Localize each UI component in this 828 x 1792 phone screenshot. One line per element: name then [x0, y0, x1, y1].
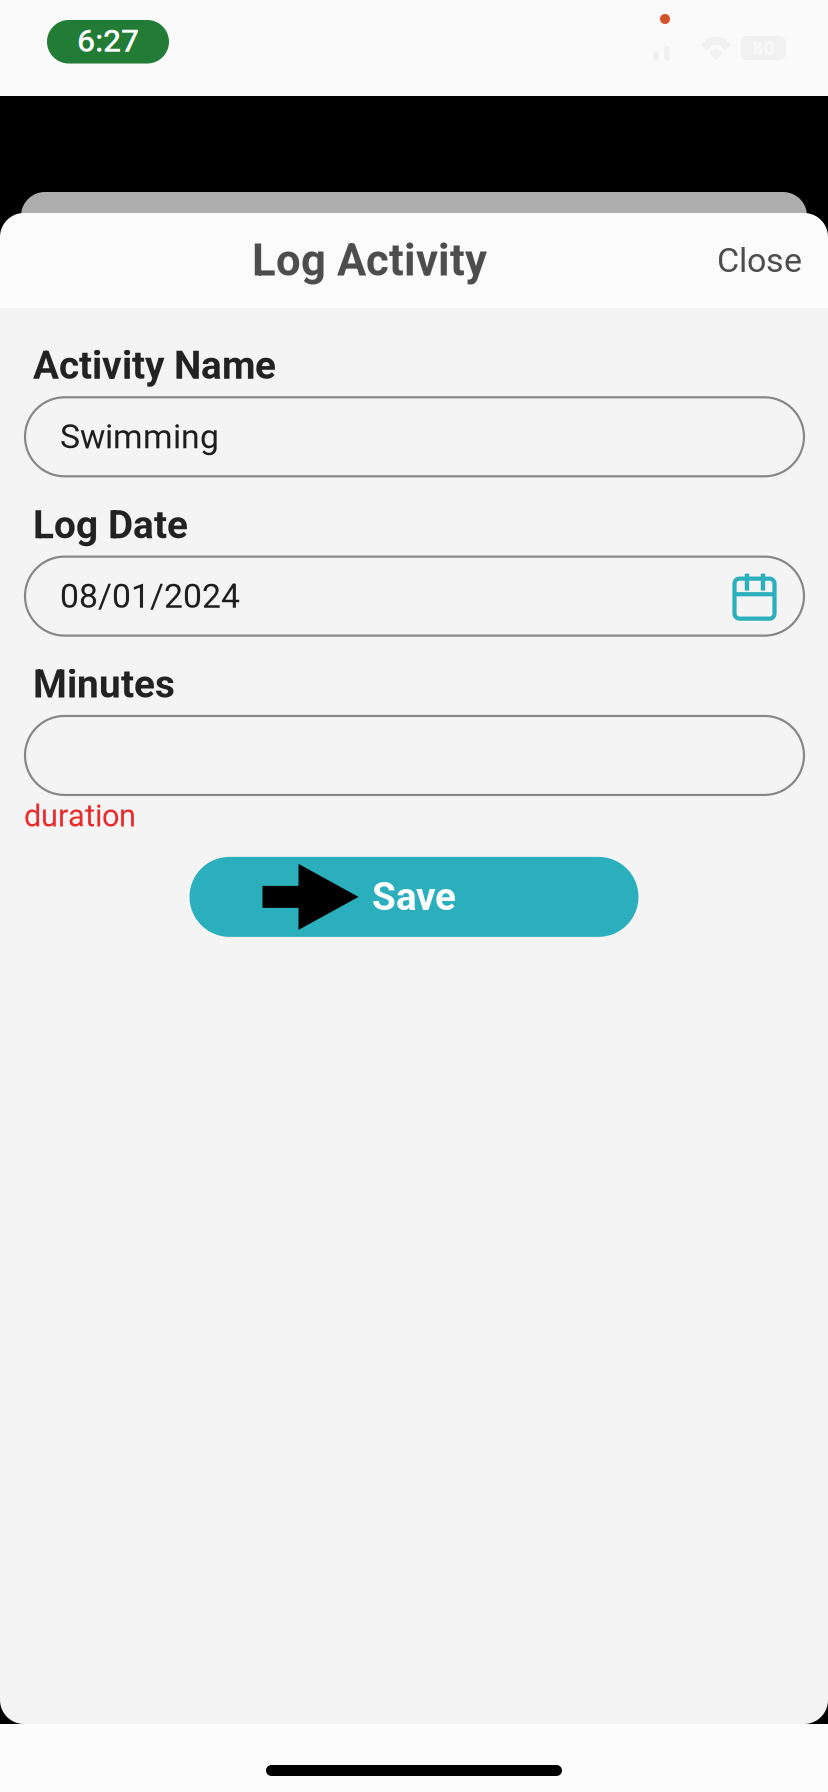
button[interactable]: Close: [711, 219, 808, 302]
staticText: Swimming: [60, 417, 219, 456]
staticText: 6:27: [77, 22, 139, 59]
staticText: Close: [717, 241, 802, 280]
staticText: duration: [24, 798, 136, 834]
button[interactable]: 08/01/2024: [0, 557, 804, 636]
button[interactable]: Save: [189, 857, 638, 937]
staticText: Minutes: [33, 662, 175, 707]
staticText: Activity Name: [33, 343, 276, 388]
button[interactable]: [0, 716, 804, 795]
staticText: Log Date: [33, 502, 188, 548]
staticText: Save: [372, 874, 456, 919]
button[interactable]: Swimming: [0, 397, 804, 476]
staticText: 08/01/2024: [60, 576, 240, 616]
staticText: Log Activity: [252, 235, 487, 286]
